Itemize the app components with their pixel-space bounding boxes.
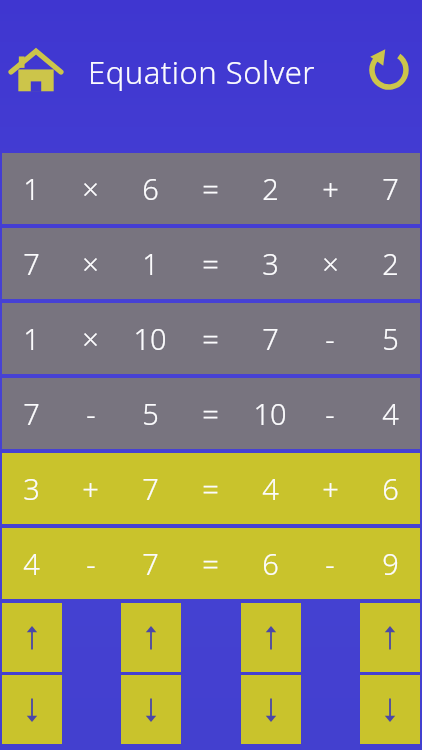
staticText: 5 [142, 394, 159, 433]
button[interactable]: Decrease [2, 675, 62, 744]
button[interactable]: 4 [2, 528, 420, 599]
staticText: × [322, 244, 339, 283]
staticText: 3 [23, 469, 40, 508]
button[interactable]: Decrease [121, 675, 181, 744]
staticText: 7 [142, 544, 159, 583]
staticText: 1 [142, 244, 159, 283]
staticText: 2 [262, 169, 279, 208]
staticText: 6 [142, 169, 159, 208]
staticText: 10 [253, 394, 287, 433]
staticText: + [322, 469, 339, 508]
button[interactable]: 7 [2, 228, 420, 299]
button[interactable]: Home [10, 45, 62, 97]
button[interactable]: Decrease [360, 675, 420, 744]
staticText: + [322, 169, 339, 208]
staticText: - [325, 544, 335, 583]
staticText: 6 [382, 469, 399, 508]
staticText: 2 [382, 244, 399, 283]
staticText: 7 [262, 319, 279, 358]
staticText: 7 [382, 169, 399, 208]
button[interactable]: 1 [2, 153, 420, 224]
staticText: × [82, 244, 99, 283]
staticText: - [325, 394, 335, 433]
button[interactable]: Decrease [241, 675, 301, 744]
button[interactable]: 3 [2, 453, 420, 524]
staticText: 9 [382, 544, 399, 583]
button[interactable]: Refresh [364, 45, 414, 95]
staticText: 1 [23, 319, 40, 358]
staticText: 4 [23, 544, 40, 583]
staticText: 4 [262, 469, 279, 508]
staticText: Equation Solver [88, 51, 316, 93]
staticText: = [202, 469, 219, 508]
staticText: 10 [133, 319, 167, 358]
staticText: 1 [23, 169, 40, 208]
staticText: 7 [23, 394, 40, 433]
staticText: 7 [23, 244, 40, 283]
button[interactable]: Increase [241, 603, 301, 672]
staticText: - [86, 544, 96, 583]
staticText: × [82, 319, 99, 358]
button[interactable]: 7 [2, 378, 420, 449]
staticText: × [82, 169, 99, 208]
button[interactable]: Increase [360, 603, 420, 672]
staticText: = [202, 169, 219, 208]
staticText: 5 [382, 319, 399, 358]
staticText: = [202, 319, 219, 358]
staticText: 3 [262, 244, 279, 283]
staticText: - [86, 394, 96, 433]
button[interactable]: Increase [121, 603, 181, 672]
staticText: 6 [262, 544, 279, 583]
staticText: 4 [382, 394, 399, 433]
staticText: 7 [142, 469, 159, 508]
staticText: = [202, 394, 219, 433]
staticText: + [82, 469, 99, 508]
staticText: - [325, 319, 335, 358]
staticText: = [202, 544, 219, 583]
staticText: = [202, 244, 219, 283]
button[interactable]: 1 [2, 303, 420, 374]
button[interactable]: Increase [2, 603, 62, 672]
